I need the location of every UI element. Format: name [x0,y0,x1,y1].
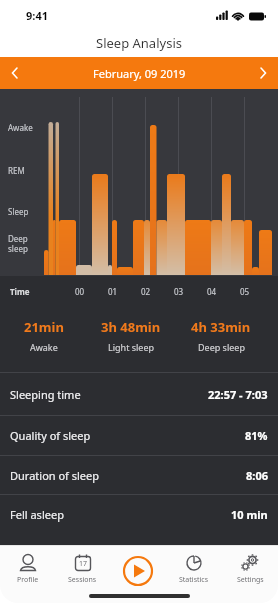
staticText: 81% [245,428,268,443]
button[interactable]: February, 09 2019 [0,57,278,89]
button[interactable] [246,57,278,89]
staticText: Sleeping time [10,387,81,402]
staticText: 3h 48min [101,318,161,336]
staticText: 05 [240,286,250,297]
button[interactable] [110,545,166,603]
button[interactable]: Quality of sleep [0,416,278,455]
staticText: 8:06 [246,468,268,483]
staticText: Fell asleep [10,507,64,522]
button[interactable] [0,57,32,89]
staticText: 17 [79,559,88,569]
staticText: sleep [8,243,28,254]
button[interactable]: 3h 48min [88,318,174,353]
staticText: 22:57 - 7:03 [208,387,268,402]
staticText: Settings [237,575,264,585]
staticText: Statistics [179,575,209,585]
button[interactable]: Sleeping time [0,373,278,415]
staticText: Awake [30,341,58,353]
staticText: Deep sleep [198,341,245,353]
staticText: Sleep [8,206,29,217]
staticText: Time [10,286,30,297]
staticText: 03 [174,286,184,297]
staticText: Sleep Analysis [96,34,182,52]
staticText: 04 [207,286,217,297]
staticText: Duration of sleep [10,468,100,483]
staticText: Light sleep [108,341,155,353]
staticText: REM [8,165,25,176]
staticText: Deep [8,233,28,244]
staticText: 9:41 [26,8,48,23]
button[interactable]: 4h 33min [174,318,268,353]
staticText: 4h 33min [191,318,251,336]
staticText: 01 [108,286,118,297]
staticText: 02 [141,286,151,297]
staticText: 10 min [231,507,268,522]
staticText: 21min [24,318,64,336]
staticText: February, 09 2019 [93,66,186,81]
staticText: Quality of sleep [10,428,91,443]
button[interactable]: Profile [0,545,55,603]
staticText: Awake [8,122,33,133]
button[interactable]: Settings [222,545,278,603]
button[interactable]: 21min [0,318,88,353]
button[interactable]: Duration of sleep [0,456,278,494]
button[interactable]: 17 [55,545,110,603]
staticText: Profile [17,575,39,585]
button[interactable]: Fell asleep [0,495,278,533]
staticText: 00 [75,286,85,297]
staticText: Sessions [68,575,97,585]
button[interactable]: Statistics [166,545,222,603]
